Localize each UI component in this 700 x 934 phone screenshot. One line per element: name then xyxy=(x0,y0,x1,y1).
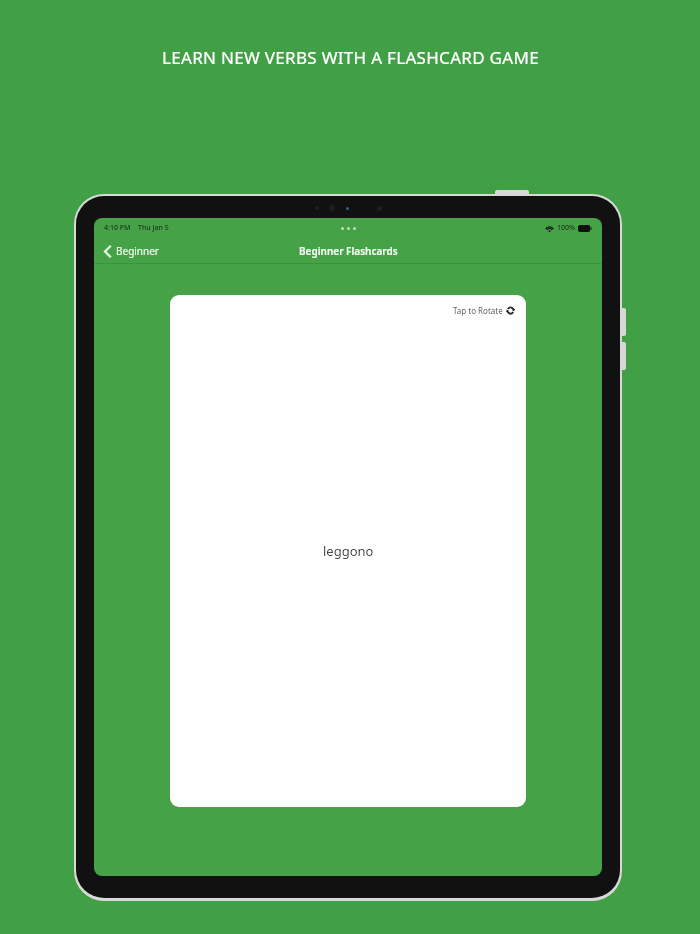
staticText: 4:10 PM xyxy=(104,223,131,233)
staticText: 100% xyxy=(557,223,575,233)
staticText: Beginner Flashcards xyxy=(299,244,398,258)
other: Back xyxy=(104,245,112,258)
other: Battery 100 percent xyxy=(578,225,592,232)
button[interactable]: Back xyxy=(100,241,163,261)
staticText: Beginner xyxy=(116,244,159,258)
button[interactable]: Tap to Rotate xyxy=(170,295,526,807)
staticText: Thu Jan 5 xyxy=(138,223,169,233)
staticText: LEARN NEW VERBS WITH A FLASHCARD GAME xyxy=(162,46,539,69)
staticText: Tap to Rotate xyxy=(453,305,503,316)
button[interactable]: Tap to Rotate xyxy=(450,303,518,318)
other: Wi-Fi xyxy=(545,225,554,232)
staticText: leggono xyxy=(323,542,374,560)
other: Rotate card xyxy=(506,306,515,315)
